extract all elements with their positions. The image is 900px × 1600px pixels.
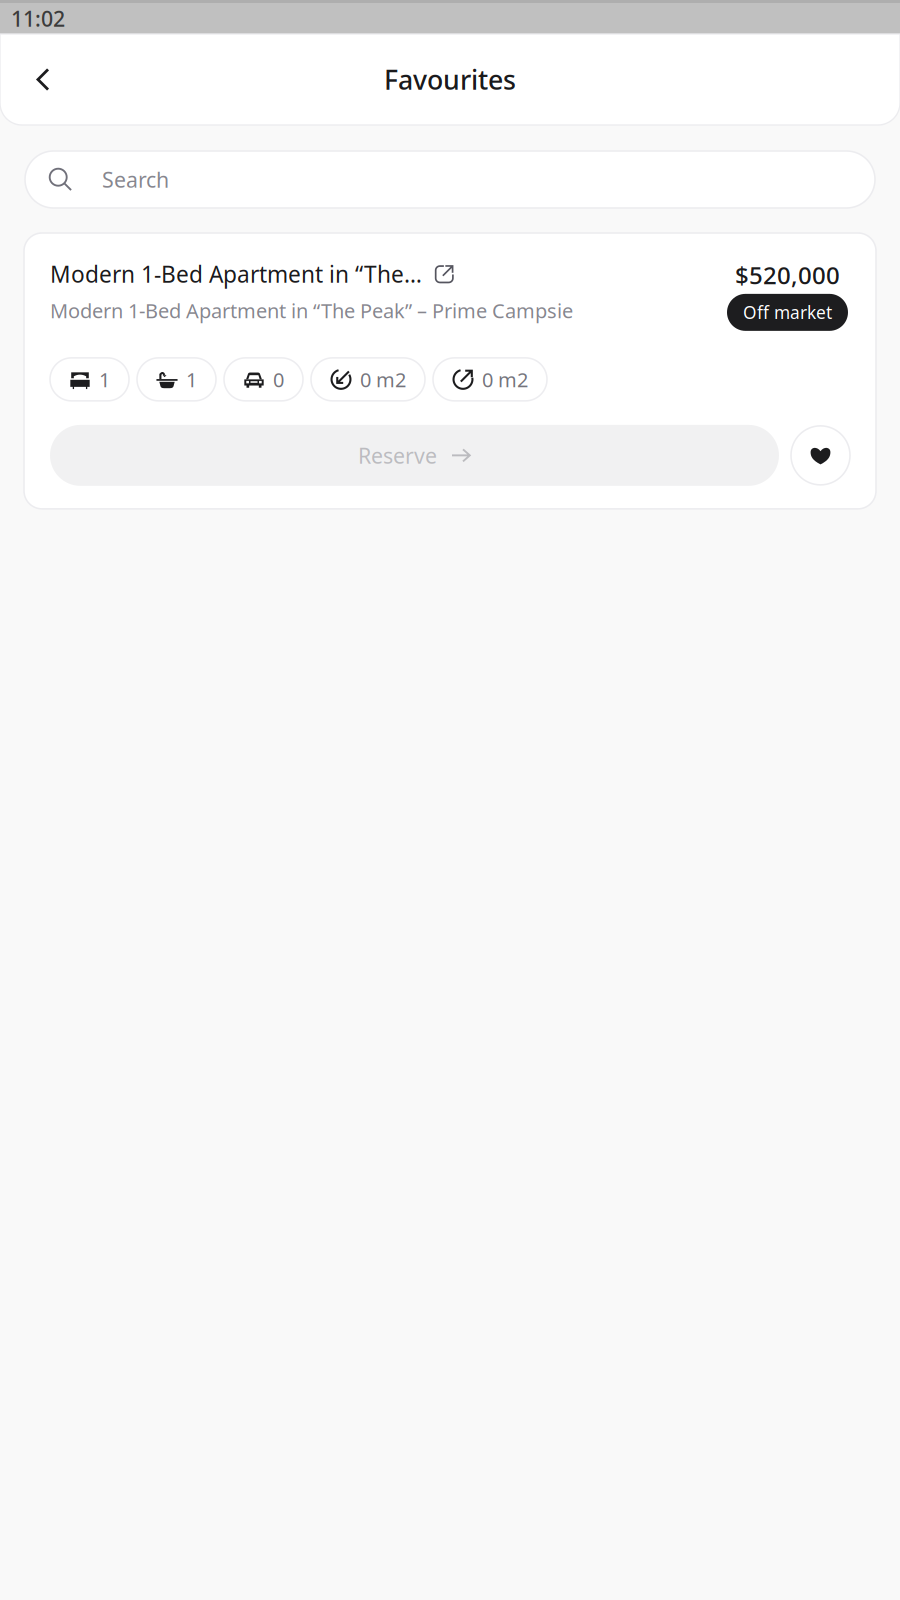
staticText: 0 m2 xyxy=(482,366,528,393)
staticText: 1 xyxy=(99,366,110,393)
staticText: 1 xyxy=(186,366,197,393)
staticText: 11:02 xyxy=(11,4,65,33)
staticText: Modern 1-Bed Apartment in “The… xyxy=(50,259,422,289)
button[interactable]: Favourite xyxy=(791,426,850,485)
staticText: Reserve xyxy=(358,441,437,469)
staticText: Search xyxy=(102,165,169,194)
staticText: Off market xyxy=(743,301,832,324)
button[interactable]: Search xyxy=(25,151,875,208)
staticText: 0 m2 xyxy=(360,366,406,393)
button[interactable]: Back xyxy=(15,51,71,107)
staticText: Favourites xyxy=(384,62,516,97)
button[interactable]: Reserve xyxy=(50,425,779,486)
staticText: Modern 1-Bed Apartment in “The Peak” – P… xyxy=(50,297,573,324)
staticText: $520,000 xyxy=(735,259,840,291)
staticText: 0 xyxy=(273,366,284,393)
